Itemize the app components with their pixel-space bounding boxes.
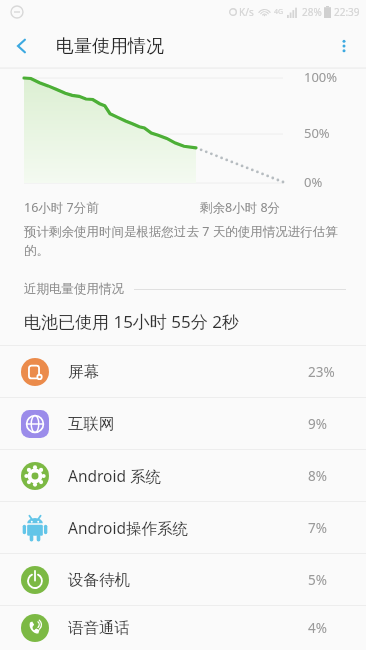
button[interactable]: 语音通话 bbox=[0, 606, 366, 650]
staticText: 近期电量使用情况 bbox=[24, 281, 124, 297]
button[interactable]: Android 系统 bbox=[0, 450, 366, 501]
staticText: 电池已使用 15小时 55分 2秒 bbox=[24, 310, 239, 333]
staticText: 22:39 bbox=[334, 5, 360, 19]
staticText: 剩余8小时 8分 bbox=[200, 199, 281, 216]
staticText: 50% bbox=[304, 124, 330, 142]
staticText: 100% bbox=[304, 68, 338, 86]
staticText: 互联网 bbox=[68, 414, 115, 434]
button[interactable]: 屏幕 bbox=[0, 346, 366, 397]
staticText: 9% bbox=[308, 415, 342, 433]
staticText: 4% bbox=[308, 619, 342, 637]
staticText: 屏幕 bbox=[68, 362, 99, 382]
staticText: K/s bbox=[239, 5, 254, 19]
button[interactable]: Android操作系统 bbox=[0, 502, 366, 553]
button[interactable]: 互联网 bbox=[0, 398, 366, 449]
staticText: 设备待机 bbox=[68, 570, 130, 590]
staticText: 8% bbox=[308, 467, 342, 485]
staticText: 4G bbox=[274, 7, 284, 17]
button[interactable]: Back bbox=[0, 24, 44, 68]
staticText: 23% bbox=[308, 363, 342, 381]
staticText: Android操作系统 bbox=[68, 517, 189, 538]
staticText: 7% bbox=[308, 519, 342, 537]
staticText: 0% bbox=[304, 173, 323, 191]
staticText: 电量使用情况 bbox=[56, 35, 164, 58]
staticText: 预计剩余使用时间是根据您过去 7 天的使用情况进行估算的。 bbox=[24, 223, 342, 259]
staticText: Android 系统 bbox=[68, 465, 162, 486]
staticText: 16小时 7分前 bbox=[24, 199, 99, 216]
button[interactable]: 设备待机 bbox=[0, 554, 366, 605]
button[interactable]: More options bbox=[322, 24, 366, 68]
staticText: 5% bbox=[308, 571, 342, 589]
staticText: 28% bbox=[302, 5, 322, 19]
staticText: 语音通话 bbox=[68, 618, 130, 638]
